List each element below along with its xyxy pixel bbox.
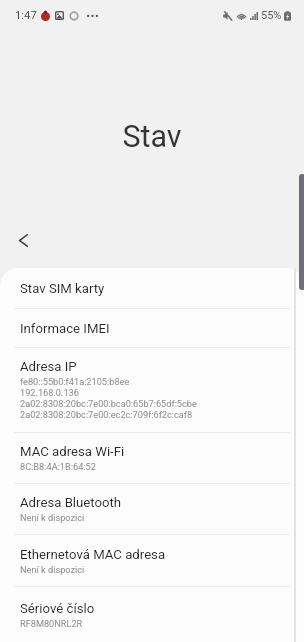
staticText: Informace IMEI	[20, 321, 110, 336]
button[interactable]: Adresa IP	[0, 348, 304, 432]
staticText: fe80::55b0:f41a:2105:b8ee	[20, 376, 130, 387]
staticText: Sériové číslo	[20, 601, 95, 616]
staticText: Není k dispozici	[20, 564, 85, 575]
staticText: Adresa IP	[20, 359, 77, 374]
button[interactable]: Back	[5, 222, 42, 259]
staticText: 1:47	[15, 9, 37, 22]
staticText: 8C:B8:4A:1B:64:52	[20, 461, 96, 472]
staticText: Stav	[122, 119, 182, 155]
button[interactable]: Sériové číslo	[0, 587, 304, 642]
button[interactable]: MAC adresa Wi-Fi	[0, 433, 304, 483]
button[interactable]: Informace IMEI	[0, 309, 304, 347]
staticText: Není k dispozici	[20, 512, 85, 523]
staticText: 192.168.0.136	[20, 387, 79, 398]
staticText: 2a02:8308:20bc:7e00:bca0:65b7:65df:5cbe	[20, 398, 197, 409]
button[interactable]: Ethernetová MAC adresa	[0, 535, 304, 586]
staticText: 2a02:8308:20bc:7e00:ec2c:709f:6f2c:caf8	[20, 409, 193, 420]
staticText: MAC adresa Wi-Fi	[20, 444, 125, 459]
staticText: 55%	[261, 9, 282, 22]
button[interactable]: Stav SIM karty	[0, 268, 304, 308]
staticText: Ethernetová MAC adresa	[20, 547, 166, 562]
staticText: Stav SIM karty	[20, 281, 105, 296]
staticText: Adresa Bluetooth	[20, 495, 122, 510]
staticText: RF8M80NRL2R	[20, 618, 83, 629]
button[interactable]: Adresa Bluetooth	[0, 484, 304, 534]
